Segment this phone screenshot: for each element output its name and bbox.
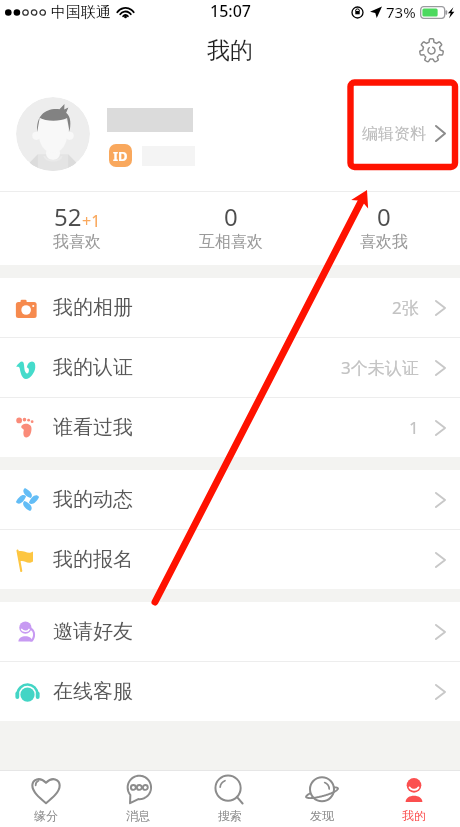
- staticText: 我的动态: [53, 487, 133, 512]
- button[interactable]: 我的报名: [0, 530, 460, 589]
- staticText: 喜欢我: [360, 232, 408, 252]
- staticText: 搜索: [218, 808, 242, 823]
- staticText: 0: [224, 200, 238, 233]
- staticText: 我的报名: [53, 547, 133, 572]
- staticText: 1: [409, 416, 419, 439]
- staticText: 消息: [126, 808, 150, 823]
- staticText: 我的认证: [53, 355, 133, 380]
- button[interactable]: 在线客服: [0, 662, 460, 721]
- staticText: 谁看过我: [53, 415, 133, 440]
- staticText: 发现: [310, 808, 334, 823]
- button[interactable]: Settings: [414, 33, 448, 67]
- button[interactable]: 我的认证: [0, 338, 460, 397]
- button[interactable]: 邀请好友: [0, 602, 460, 661]
- button[interactable]: 0: [307, 192, 460, 265]
- staticText: 互相喜欢: [199, 232, 263, 252]
- staticText: ID: [113, 147, 128, 165]
- staticText: 3个未认证: [341, 356, 419, 379]
- staticText: 我的相册: [53, 295, 133, 320]
- button[interactable]: 0: [154, 192, 307, 265]
- staticText: 73%: [386, 2, 416, 22]
- staticText: 中国联通: [51, 3, 111, 22]
- button[interactable]: 我的相册: [0, 278, 460, 337]
- button[interactable]: 我的: [368, 771, 460, 827]
- staticText: 缘分: [34, 808, 58, 823]
- button[interactable]: 52: [0, 192, 154, 265]
- button[interactable]: 谁看过我: [0, 398, 460, 457]
- staticText: 我喜欢: [53, 232, 101, 252]
- staticText: 邀请好友: [53, 619, 133, 644]
- staticText: 我的: [207, 36, 253, 65]
- button[interactable]: 我的动态: [0, 470, 460, 529]
- staticText: 15:07: [210, 0, 251, 22]
- button[interactable]: 发现: [276, 771, 368, 827]
- button[interactable]: 编辑资料: [362, 76, 460, 191]
- button[interactable]: 搜索: [184, 771, 276, 827]
- staticText: 在线客服: [53, 679, 133, 704]
- staticText: 52: [54, 200, 82, 233]
- staticText: 2张: [392, 296, 419, 319]
- staticText: 0: [377, 200, 391, 233]
- staticText: 编辑资料: [362, 124, 426, 144]
- button[interactable]: 消息: [92, 771, 184, 827]
- staticText: 我的: [402, 808, 426, 823]
- staticText: +1: [82, 210, 101, 232]
- button[interactable]: 缘分: [0, 771, 92, 827]
